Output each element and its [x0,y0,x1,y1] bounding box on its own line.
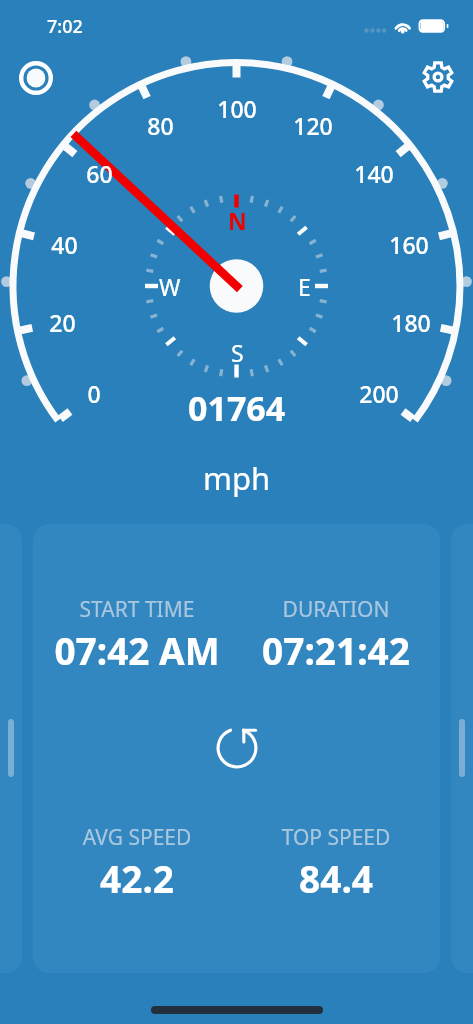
staticText: 200 [359,378,399,409]
staticText: 07:42 AM [33,625,247,675]
button[interactable]: START TIME [33,524,440,973]
staticText: 40 [51,229,78,260]
staticText: 60 [86,158,113,189]
staticText: 100 [217,93,257,124]
button[interactable]: Record [11,53,60,102]
staticText: E [298,271,311,302]
staticText: TOP SPEED [226,823,440,852]
staticText: 20 [49,307,76,338]
staticText: START TIME [33,595,247,624]
staticText: 140 [354,158,394,189]
staticText: 07:21:42 [226,625,440,675]
staticText: W [159,271,181,302]
staticText: 01764 [188,385,286,431]
staticText: 7:02 [47,14,83,39]
staticText: N [228,205,247,236]
staticText: mph [203,457,271,499]
staticText: 42.2 [33,853,247,903]
button[interactable]: Settings [413,52,462,101]
staticText: DURATION [226,595,440,624]
staticText: 180 [391,307,431,338]
staticText: 0 [87,378,101,409]
staticText: 120 [293,110,333,141]
staticText: 80 [147,110,174,141]
staticText: 160 [389,229,429,260]
button[interactable]: Reset [210,721,264,775]
staticText: 84.4 [226,853,440,903]
staticText: AVG SPEED [33,823,247,852]
staticText: S [231,337,244,368]
